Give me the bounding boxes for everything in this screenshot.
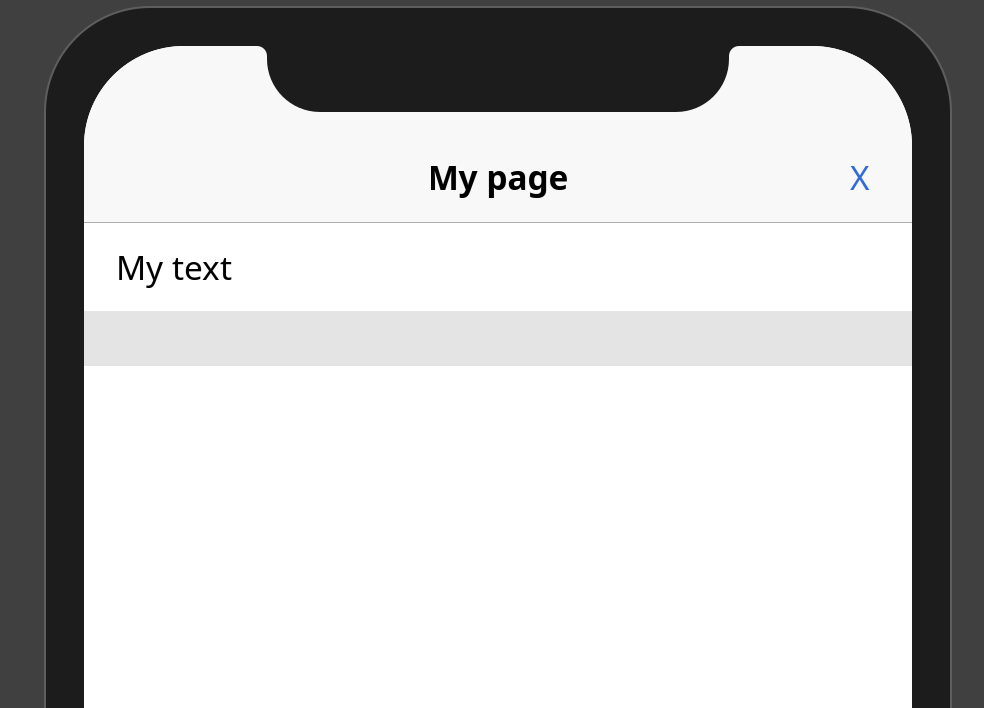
button[interactable]: My text: [84, 223, 912, 311]
button[interactable]: Close: [829, 146, 891, 208]
staticText: X: [850, 155, 870, 199]
staticText: My text: [116, 245, 232, 289]
staticText: My page: [427, 155, 568, 199]
